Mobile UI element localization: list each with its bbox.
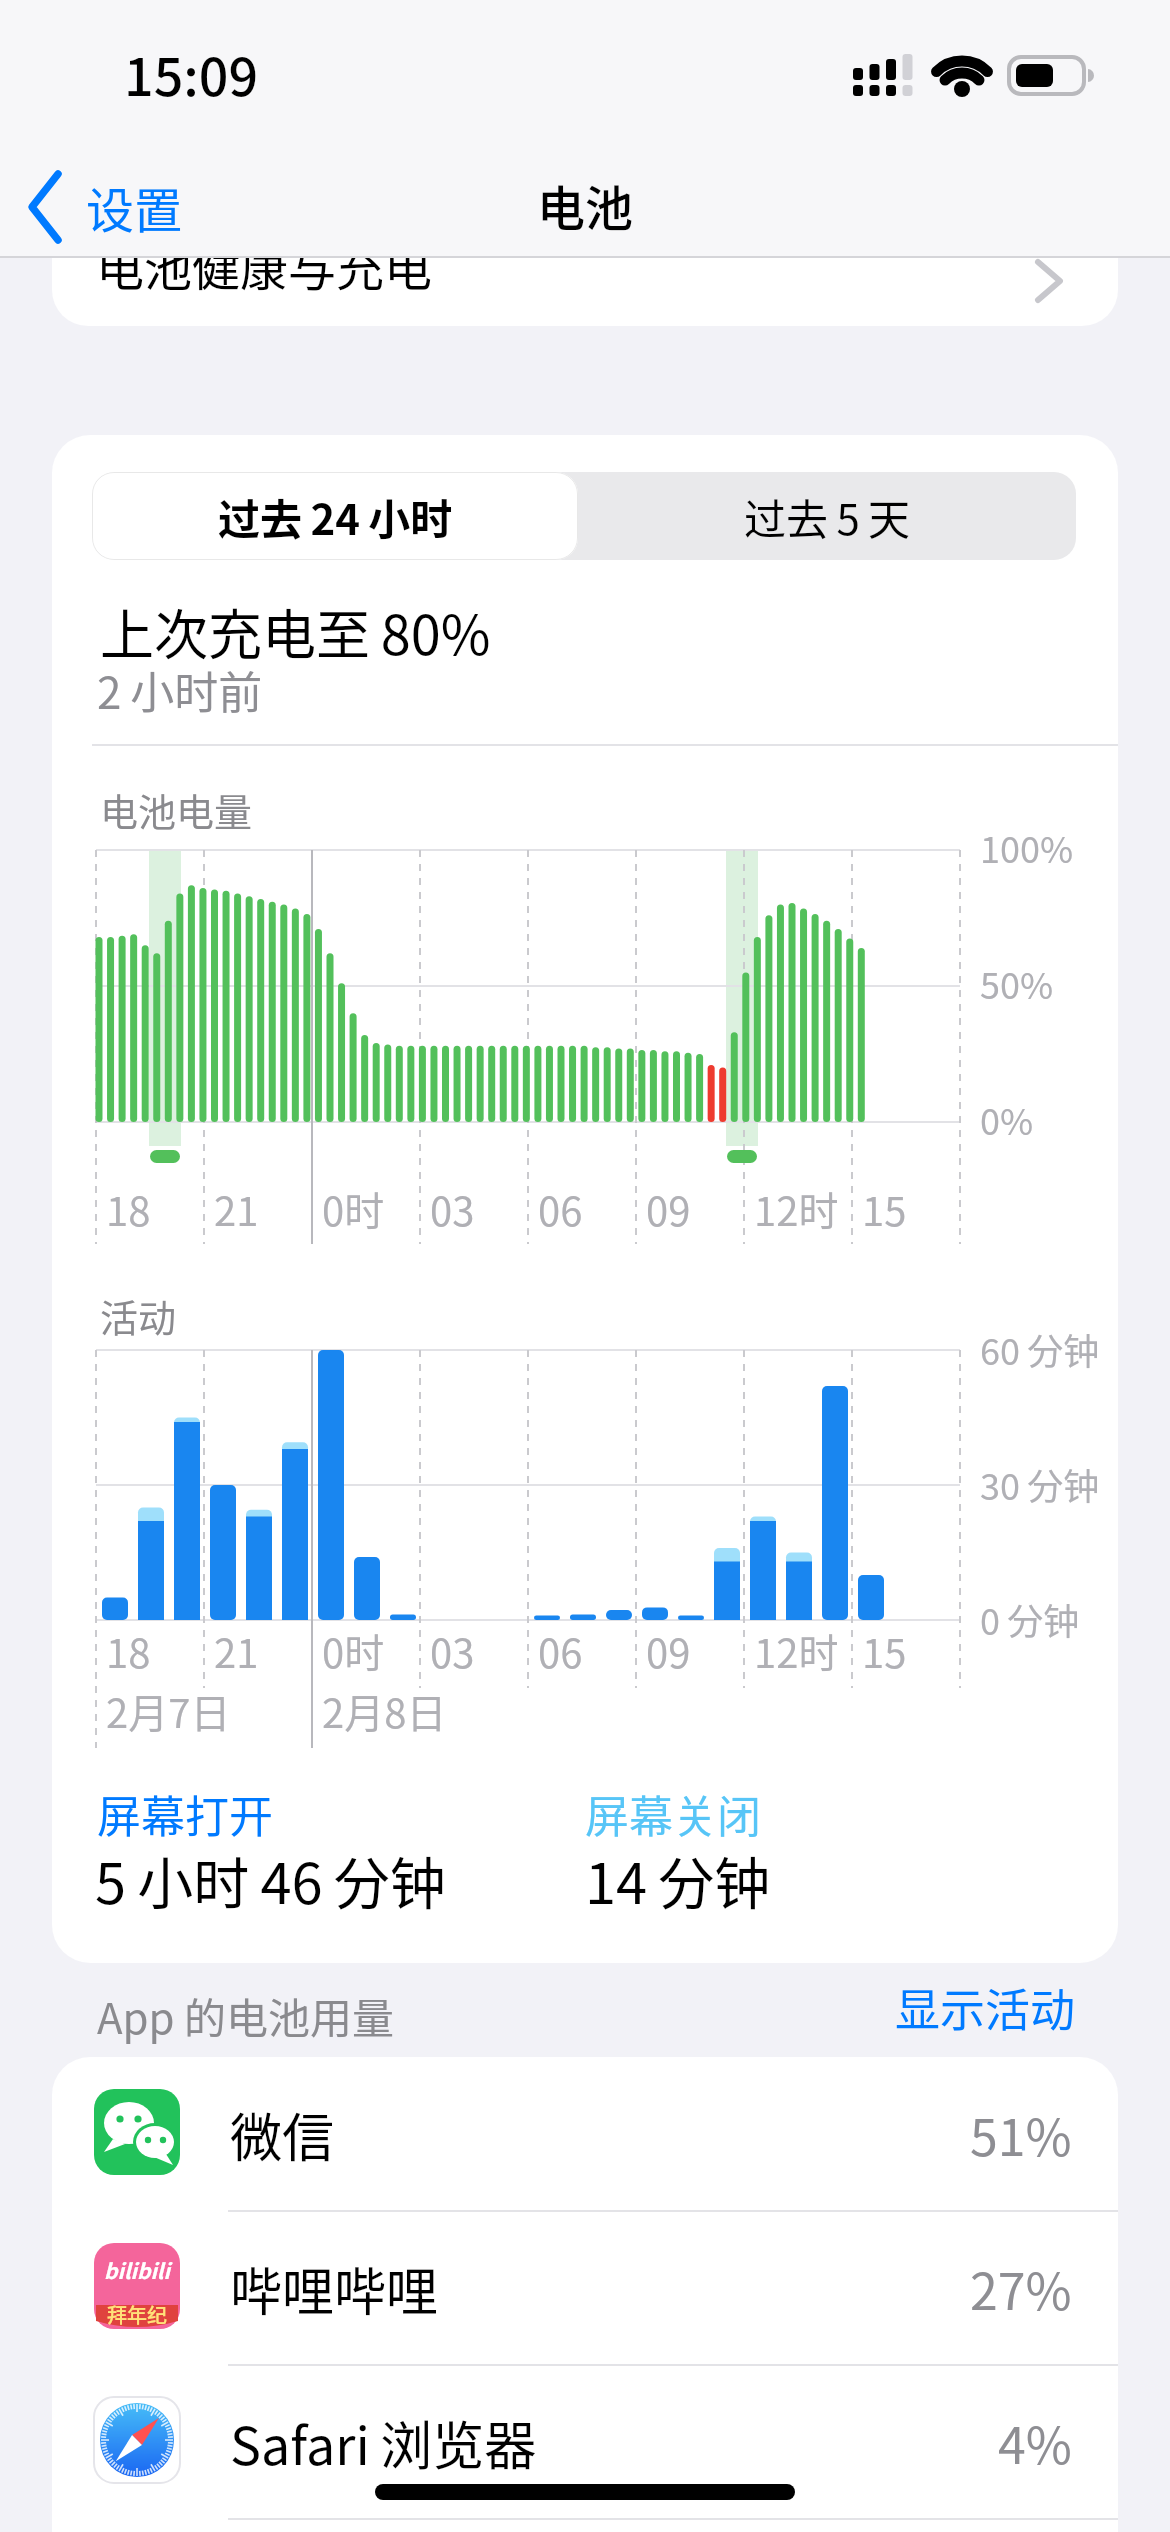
staticText: 上次充电至 80% [100,592,491,670]
staticText: 显示活动 [895,1975,1076,2035]
button[interactable]: Safari 浏览器 [52,2365,1118,2519]
staticText: 0时 [322,1180,385,1238]
staticText: 拜年纪 [107,2300,167,2329]
staticText: 09 [646,1622,691,1680]
button[interactable]: 哔哩哔哩 [52,2211,1118,2365]
staticText: 14 分钟 [585,1839,771,1920]
staticText: 12时 [754,1180,839,1238]
staticText: Safari 浏览器 [230,2405,537,2480]
staticText: 12时 [754,1622,839,1680]
button[interactable]: 设置 [20,160,220,255]
staticText: 06 [538,1622,583,1680]
button[interactable]: 微信 [52,2057,1118,2211]
staticText: 屏幕打开 [97,1782,273,1846]
staticText: 50% [980,957,1054,1009]
staticText: App 的电池用量 [97,1985,395,2046]
staticText: 0时 [322,1622,385,1680]
staticText: 设置 [86,172,183,242]
staticText: 5 小时 46 分钟 [95,1839,446,1920]
staticText: 过去 24 小时 [218,486,453,547]
staticText: 51% [970,2098,1072,2170]
staticText: 27% [970,2252,1072,2324]
staticText: 4% [998,2406,1072,2478]
staticText: 21 [214,1622,259,1680]
staticText: 60 分钟 [980,1323,1100,1375]
button[interactable]: 过去 5 天 [578,472,1076,560]
staticText: 100% [980,821,1074,873]
staticText: 电池 [537,170,634,240]
staticText: 03 [430,1180,475,1238]
button[interactable]: 过去 24 小时 [92,472,578,560]
button[interactable]: 电池健康与充电 [52,258,1118,326]
staticText: 15:09 [124,36,259,111]
staticText: 09 [646,1180,691,1238]
staticText: 18 [106,1622,151,1680]
staticText: 18 [106,1180,151,1238]
staticText: 21 [214,1180,259,1238]
staticText: 2 小时前 [97,658,263,722]
staticText: 电池电量 [100,782,253,837]
staticText: 过去 5 天 [744,486,911,547]
staticText: 06 [538,1180,583,1238]
staticText: 微信 [230,2097,335,2172]
staticText: 0% [980,1093,1034,1145]
staticText: 电池健康与充电 [96,258,433,298]
staticText: 0 分钟 [980,1593,1080,1645]
staticText: 哔哩哔哩 [230,2251,439,2326]
button[interactable]: 显示活动 [776,1975,1076,2035]
staticText: 15 [862,1622,907,1680]
staticText: 屏幕关闭 [585,1782,761,1846]
staticText: 15 [862,1180,907,1238]
staticText: 活动 [100,1288,177,1343]
staticText: 03 [430,1622,475,1680]
staticText: bilibili [104,2255,170,2285]
staticText: 2月7日 [106,1682,231,1740]
staticText: 30 分钟 [980,1458,1100,1510]
staticText: 2月8日 [322,1682,447,1740]
